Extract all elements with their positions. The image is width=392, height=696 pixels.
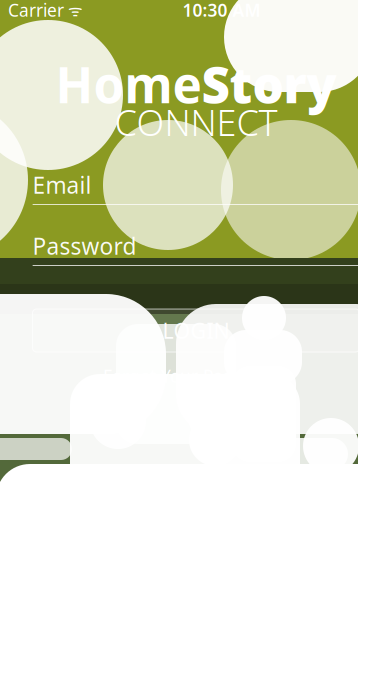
staticText: CONNECT: [114, 98, 277, 146]
staticText: Story: [201, 51, 336, 117]
button[interactable]: Forgot Your Password?: [32, 366, 359, 386]
staticText: Home: [55, 51, 201, 117]
button[interactable]: Password: [32, 233, 359, 266]
staticText: 10:30 AM: [182, 0, 260, 21]
staticText: Password: [32, 231, 136, 261]
staticText: Carrier: [8, 0, 64, 21]
button[interactable]: Email: [32, 172, 359, 205]
staticText: ᯤ: [64, 0, 83, 21]
button[interactable]: LOGIN: [32, 309, 359, 352]
staticText: Forgot Your Password?: [103, 364, 289, 387]
staticText: Email: [32, 170, 91, 200]
staticText: LOGIN: [162, 316, 229, 345]
